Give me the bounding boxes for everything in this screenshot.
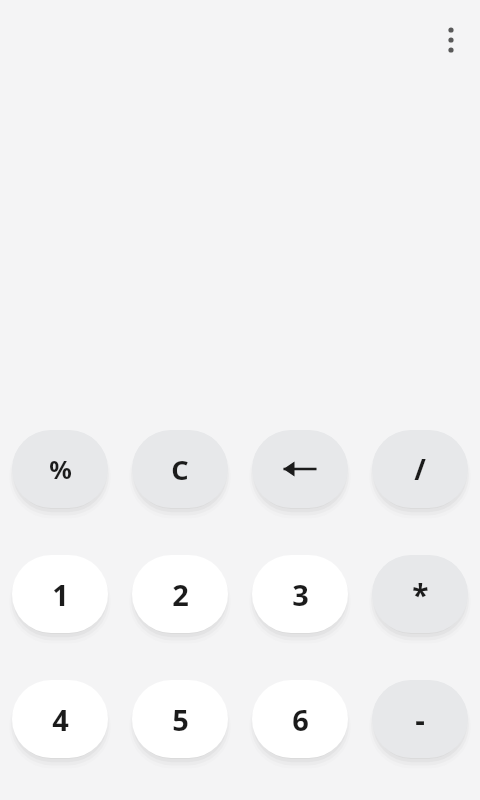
staticText: 4 bbox=[52, 700, 69, 739]
staticText: 2 bbox=[172, 575, 189, 614]
staticText: / bbox=[414, 450, 426, 488]
staticText: 5 bbox=[172, 700, 189, 739]
staticText: 1 bbox=[52, 575, 69, 614]
button[interactable]: * bbox=[372, 555, 468, 633]
button[interactable]: 6 bbox=[252, 680, 348, 758]
staticText: * bbox=[412, 574, 429, 615]
staticText: % bbox=[49, 452, 72, 486]
button[interactable]: More options bbox=[437, 20, 465, 60]
button[interactable]: 1 bbox=[12, 555, 108, 633]
button[interactable]: 4 bbox=[12, 680, 108, 758]
button[interactable]: / bbox=[372, 430, 468, 508]
staticText: C bbox=[171, 451, 189, 488]
button[interactable]: 5 bbox=[132, 680, 228, 758]
button[interactable]: 3 bbox=[252, 555, 348, 633]
staticText: - bbox=[415, 699, 425, 740]
button[interactable]: - bbox=[372, 680, 468, 758]
button[interactable]: % bbox=[12, 430, 108, 508]
staticText: 6 bbox=[292, 700, 309, 739]
button[interactable]: C bbox=[132, 430, 228, 508]
staticText: 3 bbox=[292, 575, 309, 614]
button[interactable]: 2 bbox=[132, 555, 228, 633]
button[interactable]: Backspace bbox=[252, 430, 348, 508]
